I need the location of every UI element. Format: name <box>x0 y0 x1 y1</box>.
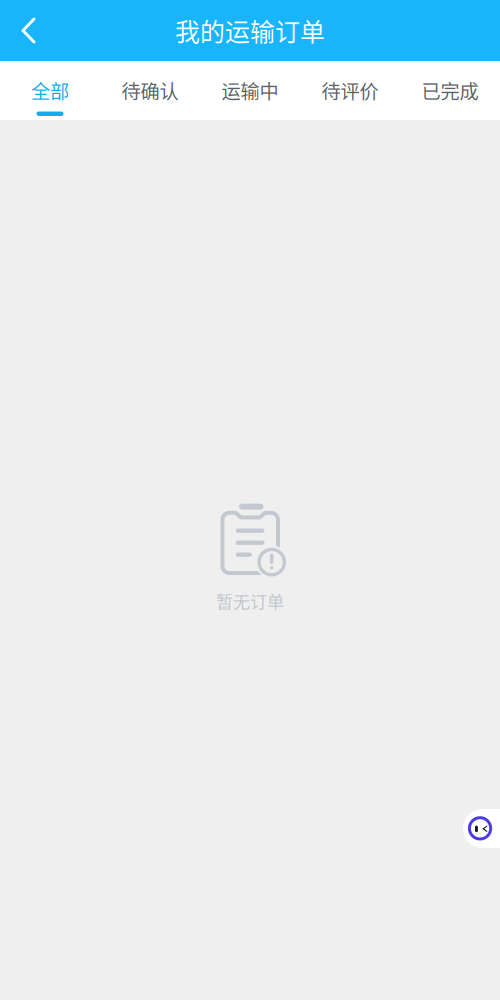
staticText: 待确认 <box>121 77 178 104</box>
staticText: 全部 <box>31 77 69 104</box>
staticText: 已完成 <box>421 77 478 104</box>
button[interactable]: 全部 <box>0 61 100 120</box>
button[interactable]: 待确认 <box>100 61 200 120</box>
button[interactable]: 已完成 <box>400 61 500 120</box>
button[interactable]: 待评价 <box>300 61 400 120</box>
button[interactable]: Back <box>0 0 54 61</box>
staticText: 待评价 <box>321 77 378 104</box>
button[interactable]: Assistant <box>463 809 500 848</box>
staticText: 运输中 <box>221 77 278 104</box>
staticText: 我的运输订单 <box>175 12 325 48</box>
staticText: 暂无订单 <box>216 588 284 613</box>
button[interactable]: 运输中 <box>200 61 300 120</box>
